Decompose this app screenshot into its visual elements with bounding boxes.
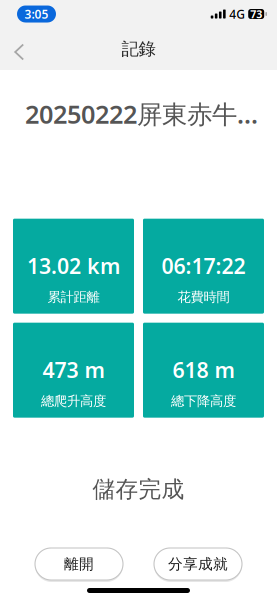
staticText: 累計距離	[47, 289, 99, 305]
button[interactable]: Back	[0, 28, 38, 70]
staticText: 13.02 km	[27, 252, 120, 280]
staticText: 總下降高度	[171, 393, 236, 409]
staticText: 473 m	[42, 356, 104, 384]
staticText: 離開	[64, 555, 94, 573]
staticText: 73	[250, 7, 262, 21]
button[interactable]: 06:17:22	[143, 219, 264, 314]
staticText: 儲存完成	[92, 476, 184, 503]
staticText: 記錄	[121, 38, 155, 60]
staticText: 4G	[229, 6, 245, 22]
button[interactable]: 473 m	[13, 323, 134, 418]
button[interactable]: 分享成就	[153, 546, 243, 582]
staticText: 618 m	[172, 356, 234, 384]
staticText: 3:05	[24, 6, 48, 22]
button[interactable]: 離開	[34, 546, 124, 582]
staticText: 20250222屏東赤牛...	[25, 97, 258, 131]
staticText: 總爬升高度	[41, 393, 106, 409]
button[interactable]: 618 m	[143, 323, 264, 418]
staticText: 分享成就	[168, 555, 228, 573]
button[interactable]: 13.02 km	[13, 219, 134, 314]
staticText: 花費時間	[177, 289, 229, 305]
staticText: 06:17:22	[161, 252, 245, 280]
